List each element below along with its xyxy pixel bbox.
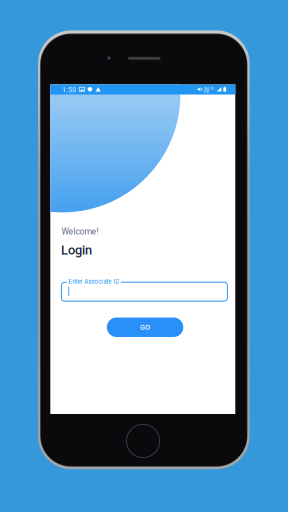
staticText: GO: [140, 323, 150, 332]
staticText: Welcome!: [61, 227, 98, 237]
staticText: HD: [204, 89, 210, 94]
button[interactable]: GO: [107, 317, 183, 337]
staticText: Login: [61, 242, 92, 257]
staticText: 1:50: [62, 86, 76, 94]
staticText: Enter Associate ID: [68, 278, 119, 285]
staticText: VoLTE: [204, 86, 214, 90]
